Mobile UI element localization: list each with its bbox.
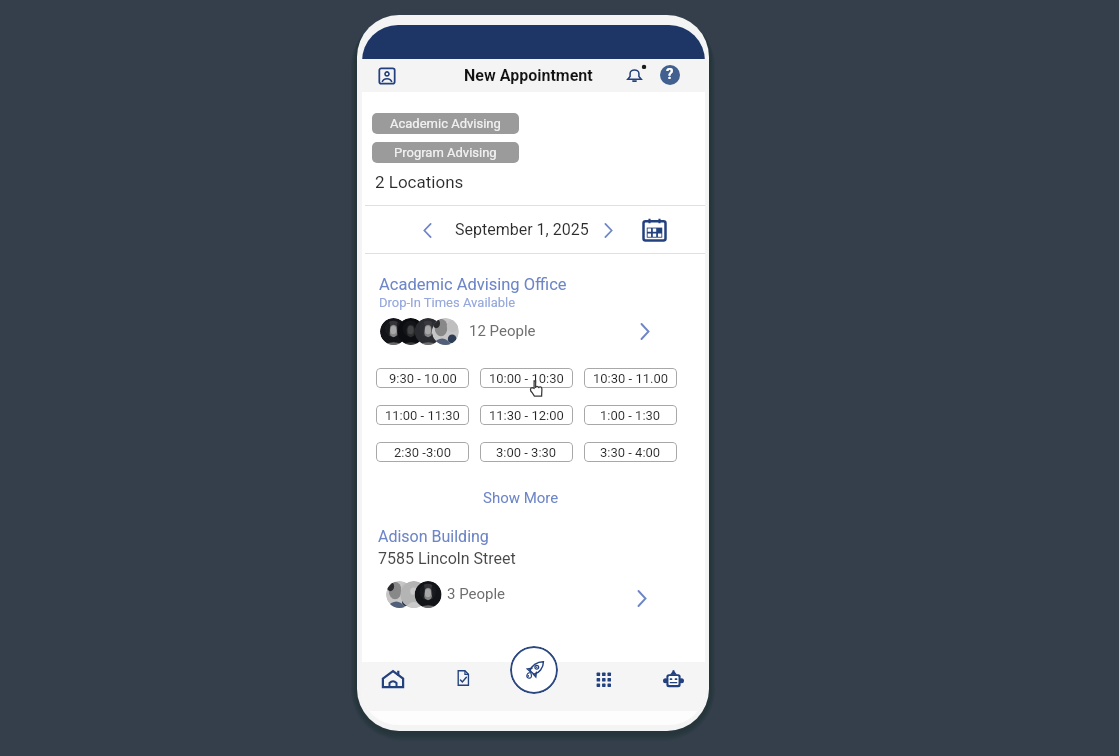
button[interactable]: Home bbox=[376, 662, 410, 696]
button[interactable]: Previous day bbox=[414, 217, 440, 243]
button[interactable]: 11:30 - 12:00 bbox=[480, 405, 573, 425]
staticText: Drop-In Times Available bbox=[379, 295, 516, 310]
staticText: 9:30 - 10.00 bbox=[389, 371, 457, 386]
button[interactable]: Program Advising bbox=[372, 142, 519, 163]
staticText: 2 Locations bbox=[375, 172, 464, 192]
button[interactable]: 1:00 - 1:30 bbox=[584, 405, 677, 425]
button[interactable]: Assistant bbox=[656, 662, 690, 696]
staticText: New Appointment bbox=[464, 66, 593, 85]
staticText: Program Advising bbox=[394, 145, 497, 160]
button[interactable]: Show More bbox=[477, 487, 565, 509]
staticText: 3 People bbox=[447, 585, 506, 603]
staticText: 2:30 -3:00 bbox=[394, 445, 451, 460]
button[interactable]: Adison Building bbox=[378, 527, 489, 546]
button[interactable]: Next day bbox=[595, 217, 621, 243]
button[interactable]: Academic Advising Office bbox=[379, 275, 567, 294]
staticText: 12 People bbox=[469, 322, 536, 340]
button[interactable]: 2:30 -3:00 bbox=[376, 442, 469, 462]
button[interactable]: Academic Advising bbox=[372, 113, 519, 134]
button[interactable]: Apps bbox=[586, 662, 620, 696]
button[interactable]: 9:30 - 10.00 bbox=[376, 368, 469, 388]
staticText: 3:30 - 4:00 bbox=[600, 445, 661, 460]
staticText: September 1, 2025 bbox=[455, 220, 589, 239]
button[interactable]: 12 People bbox=[362, 314, 705, 348]
button[interactable]: Help bbox=[660, 65, 680, 85]
button[interactable]: My documents bbox=[446, 662, 480, 696]
button[interactable]: 3:00 - 3:30 bbox=[480, 442, 573, 462]
staticText: 11:30 - 12:00 bbox=[489, 408, 564, 423]
button[interactable]: 3 People bbox=[362, 577, 705, 611]
button[interactable]: 10:00 - 10:30 bbox=[480, 368, 573, 388]
staticText: 1:00 - 1:30 bbox=[600, 408, 661, 423]
staticText: Academic Advising bbox=[390, 116, 501, 131]
button[interactable]: Notifications bbox=[623, 64, 645, 86]
button[interactable]: Profile bbox=[375, 64, 399, 88]
staticText: 3:00 - 3:30 bbox=[496, 445, 557, 460]
button[interactable]: Launch bbox=[510, 646, 558, 694]
button[interactable]: 11:00 - 11:30 bbox=[376, 405, 469, 425]
staticText: ? bbox=[666, 65, 674, 83]
button[interactable]: 3:30 - 4:00 bbox=[584, 442, 677, 462]
button[interactable]: Open calendar bbox=[640, 216, 668, 244]
staticText: Show More bbox=[483, 489, 559, 507]
staticText: 7585 Lincoln Street bbox=[378, 549, 516, 568]
button[interactable]: 10:30 - 11.00 bbox=[584, 368, 677, 388]
staticText: 10:00 - 10:30 bbox=[489, 371, 564, 386]
staticText: 11:00 - 11:30 bbox=[385, 408, 460, 423]
staticText: 10:30 - 11.00 bbox=[593, 371, 669, 386]
